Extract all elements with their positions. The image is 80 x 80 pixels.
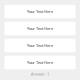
staticText: Your Text Here <box>27 43 53 48</box>
staticText: Your Text Here <box>27 26 53 31</box>
staticText: Answer: 1 <box>31 71 49 77</box>
button[interactable]: Your Text Here <box>4 38 76 53</box>
button[interactable]: Your Text Here <box>4 55 76 70</box>
button[interactable]: Your Text Here <box>4 21 76 36</box>
staticText: Your Text Here <box>27 9 53 14</box>
button[interactable]: Your Text Here <box>4 4 76 19</box>
staticText: Your Text Here <box>27 60 53 65</box>
